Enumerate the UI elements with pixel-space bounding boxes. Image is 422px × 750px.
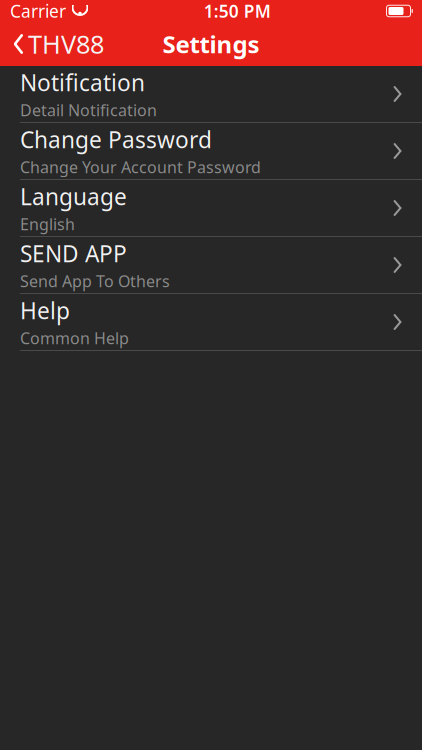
- staticText: Change Your Account Password: [20, 156, 261, 178]
- staticText: Settings: [162, 28, 259, 60]
- button[interactable]: Notification: [0, 66, 422, 122]
- staticText: 1:50 PM: [204, 0, 271, 22]
- staticText: Help: [20, 295, 70, 325]
- staticText: SEND APP: [20, 238, 127, 268]
- button[interactable]: SEND APP: [0, 237, 422, 293]
- staticText: Send App To Others: [20, 270, 170, 292]
- button[interactable]: THV88: [0, 22, 114, 66]
- staticText: Notification: [20, 67, 145, 97]
- staticText: Detail Notification: [20, 99, 157, 121]
- button[interactable]: Language: [0, 180, 422, 236]
- staticText: Language: [20, 181, 127, 211]
- staticText: English: [20, 213, 75, 235]
- staticText: THV88: [28, 27, 104, 61]
- button[interactable]: Change Password: [0, 123, 422, 179]
- staticText: Carrier: [10, 0, 66, 22]
- button[interactable]: Help: [0, 294, 422, 350]
- staticText: Change Password: [20, 124, 212, 154]
- staticText: Common Help: [20, 327, 129, 349]
